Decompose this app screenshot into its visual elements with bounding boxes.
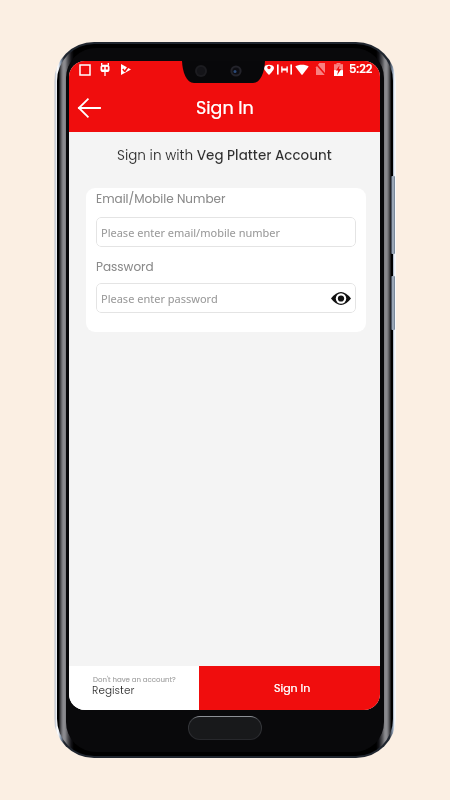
staticText: Email/Mobile Number bbox=[96, 190, 226, 207]
staticText: Sign In bbox=[274, 680, 311, 695]
staticText: Password bbox=[96, 258, 154, 275]
button[interactable]: Show password bbox=[330, 287, 352, 309]
button[interactable]: Don't have an account? bbox=[69, 666, 199, 710]
staticText: Register bbox=[92, 683, 135, 698]
staticText: Please enter email/mobile number bbox=[101, 225, 281, 240]
staticText: Please enter password bbox=[101, 291, 218, 306]
button[interactable]: Please enter email/mobile number bbox=[96, 217, 356, 247]
button[interactable]: Sign In bbox=[199, 666, 380, 710]
staticText: Sign in with Veg Platter Account bbox=[117, 146, 332, 165]
staticText: Sign In bbox=[196, 96, 254, 121]
staticText: Don't have an account? bbox=[93, 675, 176, 685]
button[interactable]: Back bbox=[71, 91, 108, 125]
button[interactable]: Home bbox=[189, 717, 261, 739]
staticText: 5:22 bbox=[349, 61, 373, 77]
button[interactable]: Please enter password bbox=[96, 283, 356, 313]
